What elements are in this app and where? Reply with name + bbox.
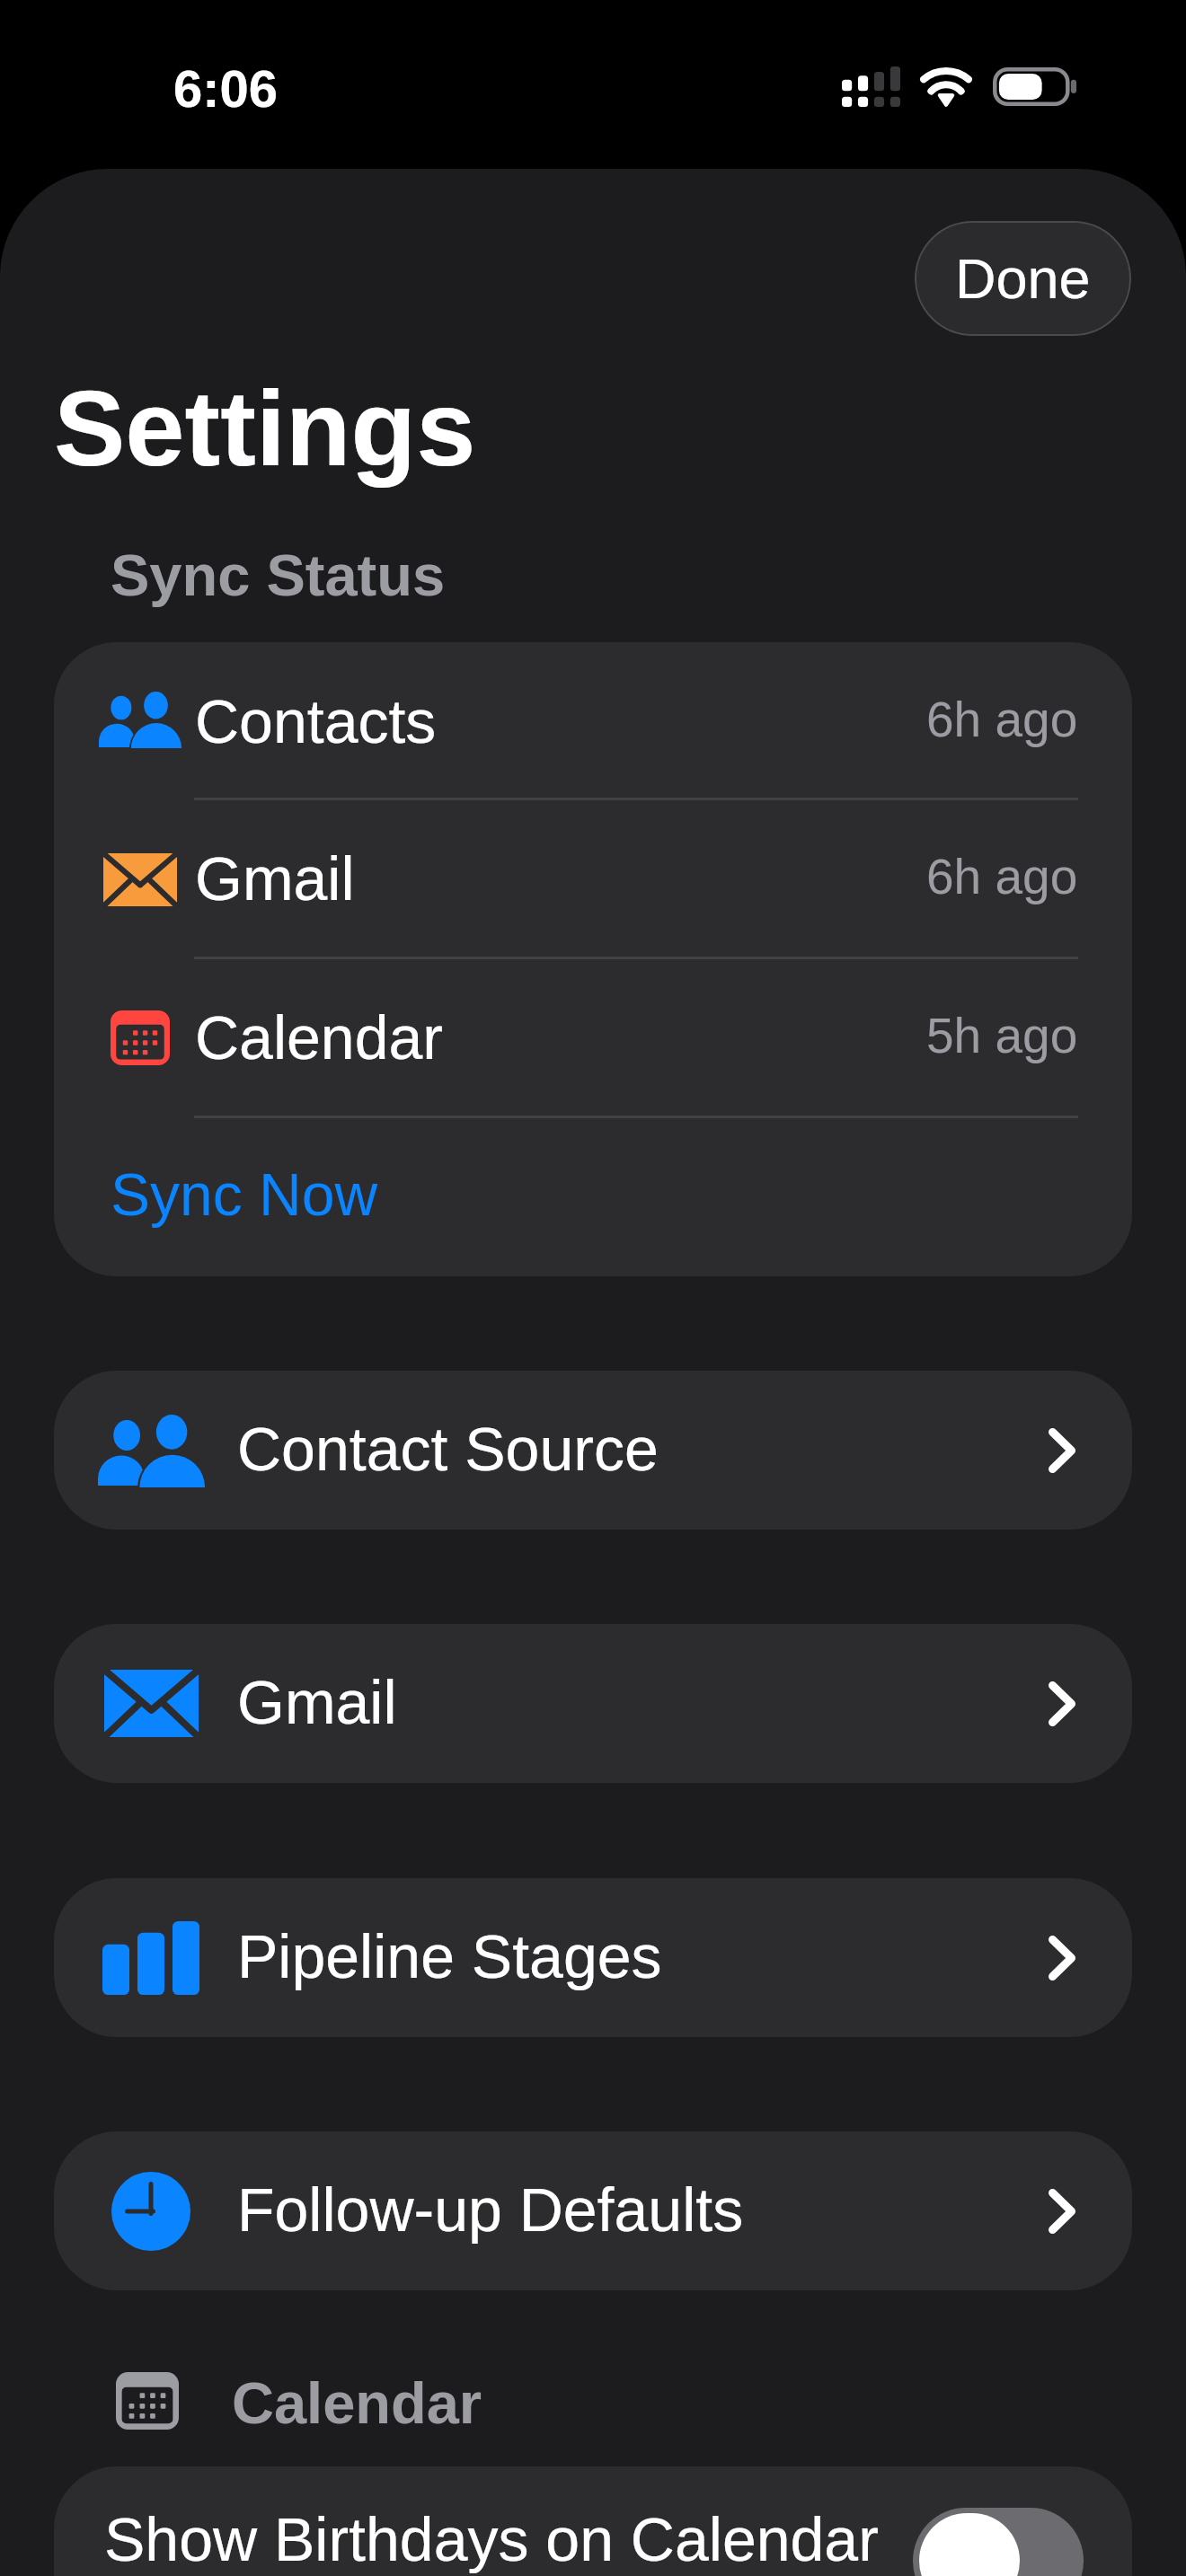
button[interactable]: Show Birthdays on Calendar (54, 2466, 1132, 2576)
staticText: Calendar (232, 2370, 482, 2436)
button[interactable]: Show Birthdays on Calendar toggle (913, 2508, 1084, 2576)
staticText: Done (955, 247, 1091, 310)
staticText: Gmail (195, 844, 355, 913)
staticText: 5h ago (926, 1008, 1078, 1063)
staticText: Contacts (195, 687, 437, 755)
staticText: Show Birthdays on Calendar (104, 2505, 879, 2573)
staticText: 6:06 (173, 59, 279, 118)
button[interactable]: Done (915, 221, 1131, 336)
staticText: Contact Source (237, 1415, 659, 1483)
button[interactable]: Sync Now (54, 1116, 1132, 1276)
button[interactable]: Calendar (54, 957, 1132, 1116)
staticText: Sync Status (111, 543, 446, 608)
button[interactable]: Gmail (54, 798, 1132, 957)
button[interactable]: Pipeline Stages (54, 1878, 1132, 2037)
staticText: 6h ago (926, 849, 1078, 904)
staticText: Pipeline Stages (237, 1922, 662, 1990)
button[interactable]: Follow-up Defaults (54, 2131, 1132, 2290)
button[interactable]: Contacts (54, 642, 1132, 798)
staticText: Calendar (195, 1003, 443, 1072)
button[interactable]: Contact Source (54, 1371, 1132, 1530)
staticText: Gmail (237, 1668, 397, 1736)
button[interactable]: Gmail (54, 1624, 1132, 1783)
staticText: 6h ago (926, 692, 1078, 746)
staticText: Settings (54, 368, 476, 488)
staticText: Follow-up Defaults (237, 2175, 744, 2244)
staticText: Sync Now (111, 1161, 378, 1228)
